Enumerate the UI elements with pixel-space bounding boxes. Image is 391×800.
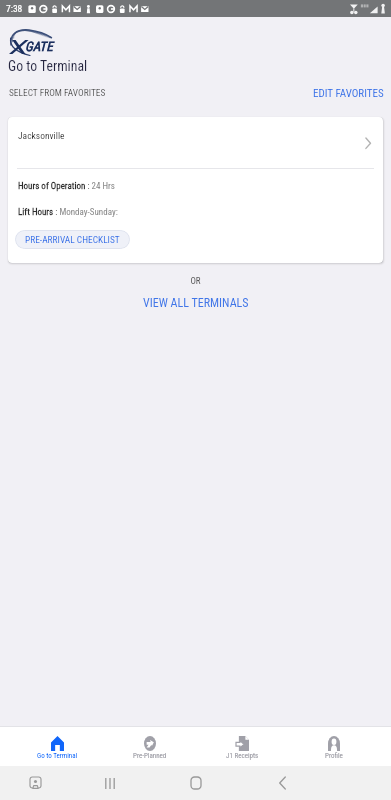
staticText: Pre-Planned — [133, 752, 167, 760]
staticText: SELECT FROM FAVORITES — [9, 87, 106, 98]
staticText: PRE-ARRIVAL CHECKLIST — [25, 234, 120, 245]
button[interactable]: Recent apps — [88, 766, 132, 800]
button[interactable]: J1 Receipts — [196, 727, 288, 766]
button[interactable]: Home — [174, 766, 218, 800]
button[interactable]: Pre-Planned — [104, 727, 196, 766]
button[interactable]: Profile — [288, 727, 380, 766]
staticText: EDIT FAVORITES — [313, 87, 384, 100]
button[interactable]: Jacksonville — [8, 117, 383, 168]
button[interactable]: EDIT FAVORITES — [305, 81, 391, 106]
staticText: Go to Terminal — [8, 58, 88, 74]
button[interactable]: VIEW ALL TERMINALS — [133, 290, 259, 316]
staticText: Go to Terminal — [37, 752, 78, 760]
staticText: J1 Receipts — [226, 752, 259, 760]
button[interactable]: Back — [260, 766, 304, 800]
button[interactable]: Go to Terminal — [11, 727, 104, 766]
staticText: 7:38 — [6, 3, 23, 14]
staticText: Jacksonville — [18, 130, 65, 141]
staticText: Lift Hours : Monday-Sunday: — [18, 207, 118, 218]
staticText: OR — [0, 276, 391, 287]
staticText: GATE — [25, 39, 53, 54]
staticText: GATE — [25, 39, 53, 54]
staticText: Profile — [325, 752, 343, 760]
other: Open Jacksonville terminal — [358, 131, 374, 151]
staticText: Hours of Operation : 24 Hrs — [18, 181, 115, 192]
button[interactable]: Change keyboard — [21, 766, 49, 800]
button[interactable]: PRE-ARRIVAL CHECKLIST — [15, 230, 130, 249]
